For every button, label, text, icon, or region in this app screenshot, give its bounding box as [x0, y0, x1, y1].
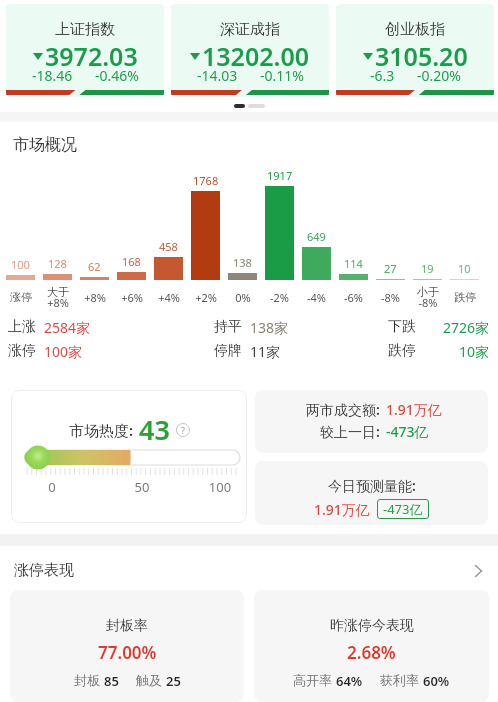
- staticText: ?: [181, 424, 185, 436]
- staticText: 较上一日:: [320, 422, 380, 441]
- staticText: 100: [11, 257, 30, 272]
- staticText: 高开率: [293, 672, 332, 688]
- staticText: 0: [42, 478, 62, 494]
- staticText: 跌停: [388, 342, 416, 359]
- staticText: 深证成指: [220, 20, 280, 39]
- staticText: 下跌: [388, 318, 416, 335]
- staticText: 11家: [250, 342, 281, 359]
- staticText: 19: [421, 261, 434, 276]
- staticText: +6%: [121, 290, 143, 305]
- staticText: 25: [166, 672, 181, 690]
- staticText: 0%: [235, 290, 251, 305]
- staticText: 77.00%: [98, 641, 157, 664]
- staticText: 2726家: [443, 318, 490, 335]
- staticText: -473亿: [383, 500, 423, 518]
- staticText: 3105.20: [375, 39, 468, 73]
- staticText: 62: [88, 259, 101, 274]
- button[interactable]: 涨停表现: [0, 561, 498, 580]
- staticText: 13202.00: [202, 39, 310, 73]
- staticText: +4%: [158, 290, 180, 305]
- staticText: -6%: [344, 290, 363, 305]
- staticText: 今日预测量能:: [328, 476, 416, 495]
- staticText: 1768: [193, 173, 219, 188]
- staticText: 649: [307, 229, 326, 244]
- staticText: 138: [233, 255, 252, 270]
- staticText: 上证指数: [55, 20, 115, 39]
- staticText: 2.68%: [347, 641, 396, 664]
- staticText: 138家: [250, 318, 289, 335]
- staticText: 涨停: [10, 290, 32, 304]
- button[interactable]: 昨涨停今表现: [254, 590, 489, 702]
- staticText: 60%: [423, 672, 450, 690]
- staticText: -0.11%: [260, 66, 304, 85]
- staticText: 100家: [44, 342, 83, 359]
- staticText: 1.91万亿: [386, 400, 442, 419]
- staticText: -8%: [381, 290, 400, 305]
- staticText: 100: [207, 478, 233, 494]
- staticText: 停牌: [214, 342, 242, 359]
- staticText: -473亿: [386, 422, 429, 441]
- button[interactable]: 封板率: [10, 590, 244, 702]
- staticText: +8%: [84, 290, 106, 305]
- staticText: 持平: [214, 318, 242, 335]
- staticText: 涨停: [8, 342, 36, 359]
- staticText: 小于 -8%: [417, 285, 439, 309]
- staticText: 10家: [459, 342, 490, 359]
- staticText: 昨涨停今表现: [330, 617, 414, 635]
- staticText: 64%: [336, 672, 363, 690]
- staticText: 85: [104, 672, 119, 690]
- staticText: 43: [139, 411, 170, 448]
- button[interactable]: 今日预测量能:: [255, 461, 488, 525]
- button[interactable]: 市场热度:: [11, 390, 247, 523]
- staticText: 10: [458, 261, 471, 276]
- staticText: -4%: [307, 290, 326, 305]
- staticText: 市场概况: [13, 135, 77, 155]
- staticText: 458: [159, 239, 178, 254]
- staticText: 168: [122, 254, 141, 269]
- staticText: 3972.03: [45, 39, 138, 73]
- button[interactable]: 上证指数: [6, 4, 164, 97]
- staticText: 大于 +8%: [47, 285, 69, 309]
- staticText: 1917: [267, 168, 293, 183]
- staticText: 50: [132, 478, 152, 494]
- staticText: 封板率: [106, 617, 148, 635]
- staticText: 创业板指: [385, 20, 445, 39]
- staticText: -6.3: [370, 66, 395, 85]
- staticText: 128: [48, 256, 67, 271]
- staticText: 2584家: [44, 318, 91, 335]
- staticText: +2%: [195, 290, 217, 305]
- button[interactable]: 深证成指: [171, 4, 329, 97]
- staticText: -0.46%: [95, 66, 139, 85]
- staticText: 触及: [136, 672, 162, 688]
- button[interactable]: 创业板指: [336, 4, 494, 97]
- staticText: 涨停表现: [14, 561, 74, 580]
- staticText: -2%: [270, 290, 289, 305]
- staticText: -0.20%: [417, 66, 461, 85]
- staticText: 114: [344, 256, 363, 271]
- staticText: 市场热度:: [69, 420, 134, 440]
- staticText: -18.46: [32, 66, 73, 85]
- staticText: 跌停: [454, 290, 476, 304]
- staticText: 获利率: [380, 672, 419, 688]
- staticText: 27: [384, 261, 397, 276]
- button[interactable]: 两市成交额:: [255, 390, 488, 453]
- staticText: 1.91万亿: [314, 500, 370, 519]
- staticText: 封板: [74, 672, 100, 688]
- staticText: 上涨: [8, 318, 36, 335]
- staticText: 两市成交额:: [306, 400, 380, 419]
- staticText: -14.03: [197, 66, 238, 85]
